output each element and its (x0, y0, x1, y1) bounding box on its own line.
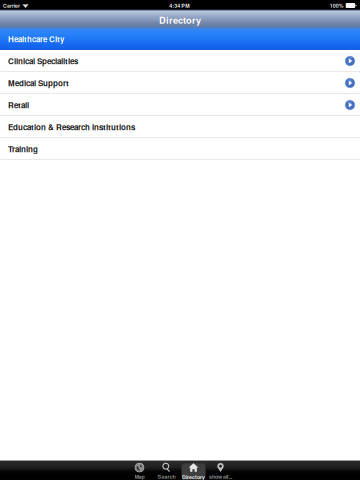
staticText: 4:34 PM (169, 2, 189, 9)
button[interactable]: Training (0, 138, 360, 160)
button[interactable]: Retail (0, 94, 360, 116)
button[interactable]: Search (153, 460, 180, 480)
button[interactable]: Medical Support (0, 72, 360, 94)
button[interactable]: Map (126, 460, 153, 480)
staticText: Training (8, 143, 38, 155)
staticText: Directory (159, 13, 201, 27)
staticText: Carrier (3, 2, 20, 9)
staticText: Clinical Specialities (8, 55, 78, 67)
staticText: Education & Research Institutions (8, 121, 135, 133)
staticText: Retail (8, 99, 29, 111)
button[interactable]: Education & Research Institutions (0, 116, 360, 138)
staticText: Map (134, 473, 144, 480)
button[interactable]: Directory (180, 460, 207, 480)
button[interactable]: Healthcare City (0, 28, 360, 50)
staticText: 100% (330, 2, 344, 9)
staticText: Directory (182, 473, 205, 480)
staticText: Healthcare City (8, 33, 64, 45)
staticText: Medical Support (8, 77, 69, 89)
staticText: Search (157, 473, 175, 480)
staticText: show all ... (209, 473, 232, 480)
button[interactable]: Clinical Specialities (0, 50, 360, 72)
button[interactable]: show all ... (207, 460, 234, 480)
